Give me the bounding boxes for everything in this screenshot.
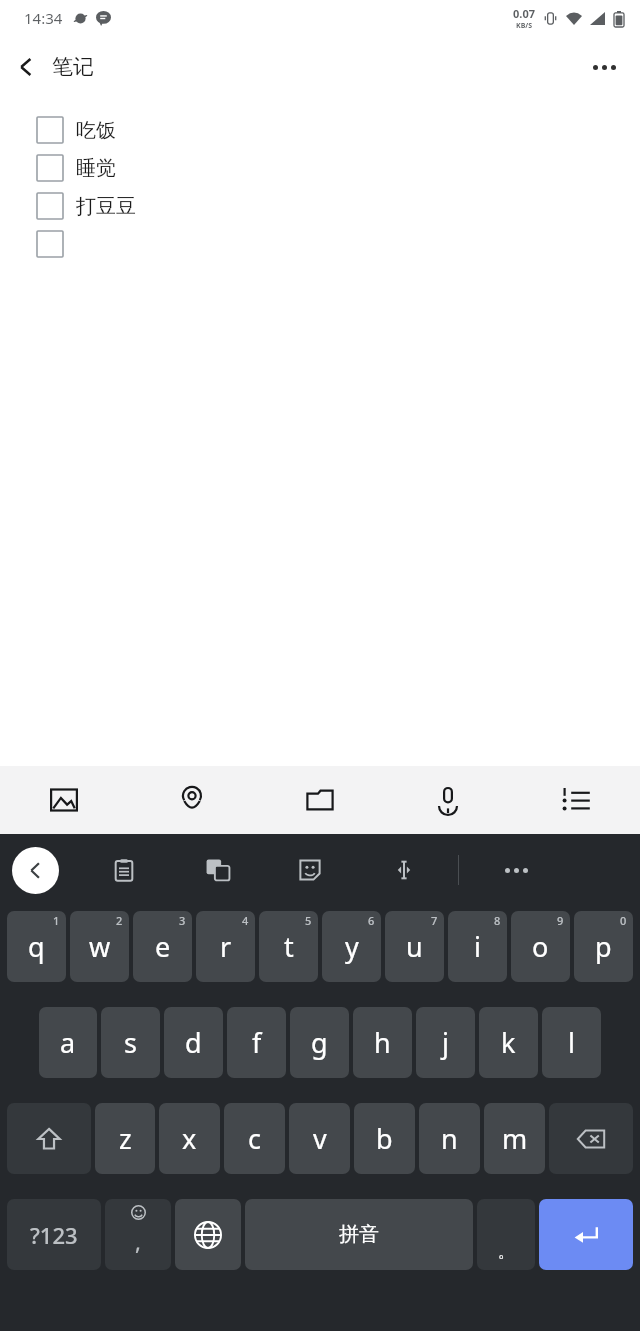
button[interactable]: y	[322, 911, 381, 982]
staticText: 0.07	[513, 6, 535, 21]
staticText: b	[376, 1120, 393, 1157]
button[interactable]: k	[479, 1007, 538, 1078]
button[interactable]: z	[95, 1103, 155, 1174]
staticText: p	[595, 928, 612, 965]
button[interactable]: Attach file	[256, 766, 384, 834]
button[interactable]: Close toolbar	[12, 847, 59, 894]
button[interactable]: d	[164, 1007, 223, 1078]
staticText: w	[89, 928, 111, 965]
button[interactable]: c	[224, 1103, 285, 1174]
button[interactable]: j	[416, 1007, 475, 1078]
button[interactable]: s	[101, 1007, 160, 1078]
button[interactable]: f	[227, 1007, 286, 1078]
button[interactable]: Enter	[539, 1199, 633, 1270]
button[interactable]: Insert image	[0, 766, 128, 834]
button[interactable]: Stickers	[286, 846, 334, 894]
button[interactable]: u	[385, 911, 444, 982]
staticText: g	[311, 1024, 328, 1061]
staticText: 6	[368, 913, 375, 928]
staticText: c	[248, 1120, 261, 1157]
staticText: 。	[498, 1241, 515, 1262]
staticText: z	[119, 1120, 132, 1157]
button[interactable]: Text editing	[380, 846, 428, 894]
staticText: o	[532, 928, 549, 965]
staticText: i	[474, 928, 481, 965]
button[interactable]: l	[542, 1007, 601, 1078]
staticText: 打豆豆	[76, 194, 136, 219]
staticText: 9	[557, 913, 564, 928]
button[interactable]: h	[353, 1007, 412, 1078]
button[interactable]: More options	[578, 41, 630, 93]
staticText: r	[220, 928, 232, 965]
button[interactable]: Numbered list	[512, 766, 640, 834]
staticText: 7	[431, 913, 438, 928]
staticText: a	[60, 1024, 76, 1061]
button[interactable]: 。	[477, 1199, 535, 1270]
button[interactable]: o	[511, 911, 570, 982]
button[interactable]: Back	[0, 41, 52, 93]
button[interactable]: Change keyboard language	[175, 1199, 241, 1270]
button[interactable]: i	[448, 911, 507, 982]
staticText: l	[568, 1024, 575, 1061]
staticText: 2	[116, 913, 123, 928]
staticText: 笔记	[52, 54, 94, 80]
button[interactable]: ?123	[7, 1199, 101, 1270]
staticText: 8	[494, 913, 501, 928]
button[interactable]: g	[290, 1007, 349, 1078]
staticText: v	[313, 1120, 327, 1157]
staticText: 吃饭	[76, 118, 116, 143]
staticText: 睡觉	[76, 156, 116, 181]
staticText: KB/S	[516, 21, 533, 31]
staticText: ?123	[30, 1220, 78, 1250]
button[interactable]: e	[133, 911, 192, 982]
staticText: 14:34	[24, 8, 63, 28]
staticText: 3	[179, 913, 186, 928]
button[interactable]: t	[259, 911, 318, 982]
button[interactable]: 睡觉	[0, 149, 640, 187]
staticText: x	[182, 1120, 197, 1157]
staticText: ,	[135, 1226, 141, 1256]
button[interactable]: q	[7, 911, 66, 982]
button[interactable]: More	[492, 846, 540, 894]
button[interactable]: p	[574, 911, 633, 982]
staticText: d	[185, 1024, 202, 1061]
staticText: n	[441, 1120, 458, 1157]
button[interactable]: 吃饭	[0, 111, 640, 149]
staticText: j	[442, 1024, 449, 1061]
button[interactable]: r	[196, 911, 255, 982]
staticText: 1	[53, 913, 60, 928]
button[interactable]: m	[484, 1103, 545, 1174]
staticText: 0	[620, 913, 627, 928]
button[interactable]: n	[419, 1103, 480, 1174]
button[interactable]: Backspace	[549, 1103, 633, 1174]
staticText: f	[252, 1024, 262, 1061]
staticText: 4	[242, 913, 249, 928]
staticText: t	[284, 928, 294, 965]
staticText: m	[502, 1120, 528, 1157]
button[interactable]: Shift	[7, 1103, 91, 1174]
staticText: h	[374, 1024, 391, 1061]
button[interactable]: x	[159, 1103, 220, 1174]
button[interactable]: Clipboard	[100, 846, 148, 894]
button[interactable]: w	[70, 911, 129, 982]
button[interactable]: Add location	[128, 766, 256, 834]
staticText: 5	[305, 913, 312, 928]
staticText: q	[28, 928, 45, 965]
button[interactable]: Voice recording	[384, 766, 512, 834]
staticText: y	[345, 928, 359, 965]
staticText: 拼音	[339, 1222, 379, 1247]
staticText: e	[155, 928, 171, 965]
button[interactable]	[0, 225, 640, 263]
button[interactable]: a	[39, 1007, 97, 1078]
button[interactable]: 打豆豆	[0, 187, 640, 225]
button[interactable]: Emoji and comma	[105, 1199, 171, 1270]
staticText: s	[124, 1024, 137, 1061]
button[interactable]: Translate	[194, 846, 242, 894]
button[interactable]: v	[289, 1103, 350, 1174]
button[interactable]: b	[354, 1103, 415, 1174]
button[interactable]: 拼音	[245, 1199, 473, 1270]
staticText: u	[406, 928, 423, 965]
staticText: k	[501, 1024, 516, 1061]
